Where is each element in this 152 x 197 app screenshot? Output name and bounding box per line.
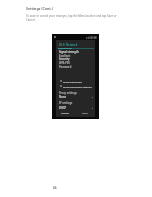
staticText: Cancel — [61, 111, 70, 114]
staticText: IP settings — [59, 101, 73, 104]
button[interactable]: Signal strength — [59, 50, 93, 57]
staticText: Wi-Fi Network — [59, 43, 78, 47]
button[interactable]: Save — [75, 109, 95, 115]
staticText: Proxy settings — [59, 91, 77, 94]
staticText: Show advanced options — [63, 85, 92, 88]
staticText: DHCP — [59, 106, 67, 110]
button[interactable]: Show password — [60, 79, 94, 83]
staticText: None — [59, 95, 66, 99]
staticText: Show password — [63, 80, 82, 83]
button[interactable]: DHCP — [59, 106, 93, 110]
staticText: Excellent — [59, 54, 71, 57]
other: Status icons — [86, 36, 97, 39]
staticText: Settings (Cont.) — [26, 6, 53, 11]
staticText: To save or cancel your changes, tap the … — [26, 14, 131, 22]
button[interactable]: Security — [59, 57, 93, 64]
button[interactable]: Show advanced options — [60, 84, 94, 88]
staticText: 66 — [53, 186, 57, 190]
staticText: Password — [59, 65, 72, 69]
button[interactable]: None — [59, 95, 93, 99]
staticText: Save — [82, 111, 88, 114]
button[interactable]: Cancel — [56, 109, 75, 115]
staticText: Security — [59, 57, 70, 61]
staticText: Signal strength — [59, 50, 79, 54]
staticText: WPA PSK — [59, 61, 70, 64]
